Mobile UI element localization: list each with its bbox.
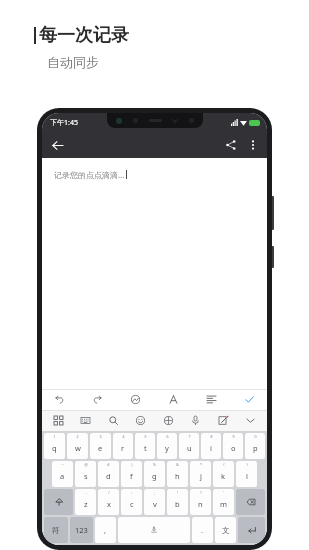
button[interactable]: Redo — [90, 392, 105, 407]
button[interactable]: Emoji — [133, 413, 148, 428]
staticText: 5 — [144, 434, 147, 439]
button[interactable]: 9 — [223, 433, 243, 459]
button[interactable]: & — [167, 461, 188, 487]
button[interactable]: @ — [75, 461, 96, 487]
staticText: x — [107, 499, 111, 509]
staticText: e — [98, 443, 103, 453]
staticText: r — [121, 443, 125, 453]
button[interactable]: Search — [106, 413, 121, 428]
staticText: , — [104, 525, 107, 535]
button[interactable]: Voice input — [188, 413, 203, 428]
staticText: - — [85, 490, 87, 495]
staticText: t — [144, 443, 147, 453]
button[interactable]: ? — [190, 489, 211, 515]
staticText: k — [221, 471, 226, 481]
button[interactable]: Shift — [44, 489, 73, 515]
staticText: 文 — [222, 526, 230, 535]
button[interactable]: / — [98, 489, 119, 515]
staticText: . — [201, 525, 204, 535]
staticText: 自动同步 — [47, 54, 99, 70]
staticText: @ — [84, 462, 88, 467]
button[interactable]: ' — [213, 489, 234, 515]
staticText: 9 — [232, 434, 235, 439]
button[interactable]: ! — [167, 489, 188, 515]
staticText: / — [108, 490, 110, 495]
staticText: ' — [223, 490, 224, 495]
staticText: 2 — [76, 434, 79, 439]
button[interactable]: | — [121, 461, 142, 487]
staticText: a — [60, 471, 65, 481]
button[interactable]: 符 — [44, 517, 68, 543]
button[interactable]: 7 — [179, 433, 199, 459]
button[interactable]: 4 — [113, 433, 133, 459]
staticText: 3 — [99, 434, 102, 439]
button[interactable]: Align — [204, 392, 219, 407]
button[interactable]: More options — [244, 136, 262, 154]
staticText: ! — [177, 490, 178, 495]
staticText: 下午1:45 — [50, 118, 78, 128]
button[interactable]: 1 — [44, 433, 65, 459]
staticText: c — [130, 499, 134, 509]
staticText: 0 — [254, 434, 257, 439]
button[interactable]: Done — [242, 392, 257, 407]
staticText: i — [210, 443, 212, 453]
staticText: h — [175, 471, 180, 481]
button[interactable]: % — [144, 461, 165, 487]
staticText: o — [231, 443, 236, 453]
staticText: d — [106, 471, 111, 481]
staticText: 8 — [210, 434, 213, 439]
staticText: ~ — [61, 462, 64, 467]
button[interactable]: 123 — [70, 517, 93, 543]
button[interactable]: Delete — [236, 489, 265, 515]
staticText: w — [75, 443, 81, 453]
staticText: 123 — [75, 525, 88, 535]
staticText: 符 — [52, 526, 60, 535]
staticText: 6 — [166, 434, 169, 439]
staticText: 记录您的点点滴滴… — [54, 169, 125, 180]
button[interactable]: 2 — [67, 433, 88, 459]
button[interactable]: . — [192, 517, 213, 543]
button[interactable]: 3 — [90, 433, 111, 459]
staticText: | — [131, 462, 133, 467]
button[interactable]: , — [95, 517, 116, 543]
staticText: z — [84, 499, 88, 509]
button[interactable]: : — [121, 489, 142, 515]
staticText: # — [107, 462, 110, 467]
button[interactable]: ; — [144, 489, 165, 515]
button[interactable]: ( — [213, 461, 234, 487]
button[interactable]: Text style — [166, 392, 181, 407]
staticText: b — [175, 499, 180, 509]
staticText: f — [130, 471, 133, 481]
button[interactable]: 0 — [245, 433, 265, 459]
button[interactable]: Handwriting — [216, 413, 231, 428]
button[interactable]: Translate — [161, 413, 176, 428]
button[interactable]: 5 — [135, 433, 155, 459]
button[interactable]: Undo — [52, 392, 67, 407]
staticText: m — [220, 499, 228, 509]
button[interactable]: 6 — [157, 433, 177, 459]
button[interactable]: # — [98, 461, 119, 487]
staticText: 7 — [188, 434, 191, 439]
button[interactable]: ) — [236, 461, 257, 487]
button[interactable]: 文 — [215, 517, 236, 543]
staticText: l — [246, 471, 248, 481]
staticText: g — [152, 471, 157, 481]
button[interactable]: ~ — [52, 461, 73, 487]
button[interactable]: Insert image — [128, 392, 143, 407]
staticText: & — [176, 462, 179, 467]
button[interactable]: * — [190, 461, 211, 487]
staticText: y — [165, 443, 169, 453]
button[interactable]: - — [75, 489, 96, 515]
button[interactable]: Share — [222, 136, 240, 154]
button[interactable]: Hide keyboard — [243, 413, 258, 428]
button[interactable]: Space — [118, 517, 190, 543]
button[interactable]: Back — [48, 136, 66, 154]
button[interactable]: 8 — [201, 433, 221, 459]
staticText: n — [198, 499, 203, 509]
button[interactable]: Keyboard — [78, 413, 93, 428]
staticText: ( — [223, 462, 225, 467]
button[interactable]: Apps — [51, 413, 66, 428]
staticText: q — [52, 443, 57, 453]
staticText: j — [200, 471, 202, 481]
button[interactable]: Enter — [238, 517, 265, 543]
